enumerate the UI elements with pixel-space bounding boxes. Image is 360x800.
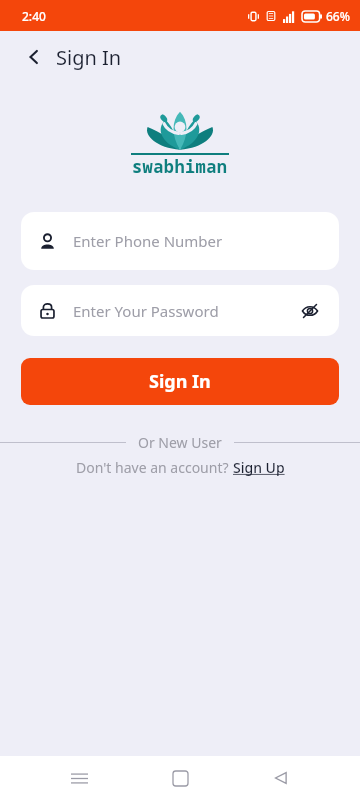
staticText: Enter Phone Number bbox=[73, 231, 223, 251]
button[interactable]: Back bbox=[18, 41, 50, 73]
button[interactable]: Sign In bbox=[21, 358, 339, 405]
staticText: 66% bbox=[326, 8, 350, 24]
button[interactable]: Show password bbox=[297, 298, 323, 324]
staticText: Enter Your Password bbox=[73, 301, 219, 321]
staticText: Sign In bbox=[149, 369, 211, 394]
staticText: 2:40 bbox=[22, 8, 46, 24]
staticText: Sign Up bbox=[233, 458, 285, 477]
staticText: Sign In bbox=[56, 44, 122, 71]
button[interactable]: Back bbox=[259, 756, 303, 800]
button[interactable]: Sign Up bbox=[233, 458, 285, 477]
staticText: swabhiman bbox=[132, 155, 228, 178]
button[interactable]: Recents bbox=[57, 756, 101, 800]
button[interactable]: Enter Phone Number bbox=[21, 212, 339, 270]
staticText: Don't have an account? bbox=[76, 458, 233, 477]
staticText: Or New User bbox=[138, 433, 222, 452]
button[interactable]: Home bbox=[158, 756, 202, 800]
other: Swabhiman logo bbox=[144, 111, 216, 151]
button[interactable]: Enter Your Password bbox=[21, 285, 339, 336]
